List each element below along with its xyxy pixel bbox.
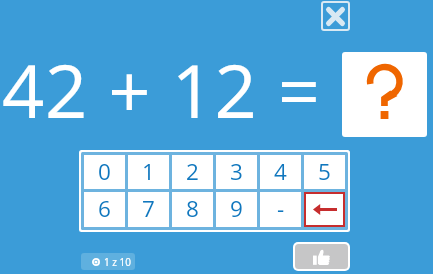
button[interactable]: 6 xyxy=(84,192,125,227)
staticText: - xyxy=(277,193,285,224)
button[interactable]: 1 xyxy=(128,155,169,189)
staticText: 1 xyxy=(142,156,155,187)
button[interactable]: Answer xyxy=(342,52,427,137)
button[interactable]: 3 xyxy=(216,155,257,189)
staticText: 9 xyxy=(230,193,243,224)
button[interactable]: 1 z 10 xyxy=(81,253,135,270)
button[interactable]: 4 xyxy=(260,155,301,189)
staticText: 3 xyxy=(230,156,243,187)
staticText: 0 xyxy=(98,156,111,187)
staticText: 2 xyxy=(186,156,199,187)
staticText: 6 xyxy=(98,193,111,224)
button[interactable]: 9 xyxy=(216,192,257,227)
button[interactable]: Backspace xyxy=(304,192,345,227)
button[interactable]: 7 xyxy=(128,192,169,227)
button[interactable]: - xyxy=(260,192,301,227)
button[interactable]: Close xyxy=(321,1,350,31)
button[interactable]: 8 xyxy=(172,192,213,227)
staticText: 8 xyxy=(186,193,199,224)
button[interactable]: 2 xyxy=(172,155,213,189)
staticText: 42 + 12 = xyxy=(2,39,321,140)
staticText: 5 xyxy=(318,156,331,187)
staticText: 4 xyxy=(274,156,287,187)
button[interactable]: 5 xyxy=(304,155,345,189)
button[interactable]: 0 xyxy=(84,155,125,189)
staticText: 7 xyxy=(142,193,155,224)
button[interactable]: Confirm answer xyxy=(295,244,348,269)
staticText: 1 z 10 xyxy=(104,255,132,269)
